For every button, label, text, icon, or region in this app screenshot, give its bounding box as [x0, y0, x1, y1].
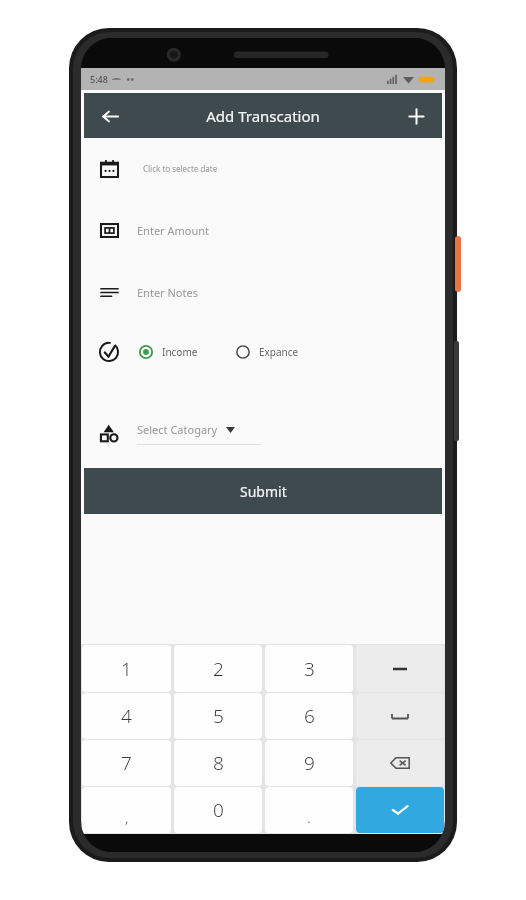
- button[interactable]: Expance: [236, 345, 299, 359]
- button[interactable]: 7: [82, 740, 171, 786]
- button[interactable]: 0: [174, 787, 262, 833]
- staticText: 2: [213, 656, 224, 682]
- button[interactable]: Back: [93, 99, 127, 133]
- button[interactable]: 1: [82, 645, 171, 692]
- staticText: 5: [213, 703, 224, 729]
- button[interactable]: Income: [139, 345, 198, 359]
- button[interactable]: 2: [174, 645, 262, 692]
- staticText: Add Transcation: [206, 106, 320, 126]
- staticText: Income: [162, 345, 198, 359]
- button[interactable]: 6: [265, 693, 353, 739]
- button[interactable]: Click to selecte date: [81, 154, 445, 182]
- staticText: 8: [213, 750, 224, 776]
- staticText: 0: [213, 797, 224, 823]
- button[interactable]: 8: [174, 740, 262, 786]
- staticText: ,: [125, 807, 129, 827]
- staticText: Click to selecte date: [143, 163, 218, 174]
- staticText: 3: [304, 656, 315, 682]
- staticText: Select Catogary: [137, 422, 218, 437]
- button[interactable]: Done: [356, 787, 444, 833]
- staticText: Expance: [259, 345, 299, 359]
- button[interactable]: Select Catogary: [137, 422, 261, 445]
- button[interactable]: Minus: [356, 645, 444, 692]
- button[interactable]: 9: [265, 740, 353, 786]
- staticText: 6: [304, 703, 315, 729]
- staticText: 9: [304, 750, 315, 776]
- button[interactable]: Enter Notes: [81, 278, 445, 306]
- button[interactable]: 3: [265, 645, 353, 692]
- staticText: .: [307, 807, 311, 827]
- button[interactable]: ,: [82, 787, 171, 833]
- button[interactable]: 5: [174, 693, 262, 739]
- staticText: 7: [121, 750, 132, 776]
- button[interactable]: Delete: [356, 740, 444, 786]
- button[interactable]: 4: [82, 693, 171, 739]
- button[interactable]: Space: [356, 693, 444, 739]
- staticText: Enter Notes: [137, 285, 198, 300]
- staticText: 5:48: [90, 73, 108, 85]
- button[interactable]: Enter Amount: [81, 216, 445, 244]
- button[interactable]: Add: [399, 99, 433, 133]
- staticText: 4: [121, 703, 132, 729]
- staticText: Enter Amount: [137, 223, 210, 238]
- staticText: 1: [121, 656, 132, 682]
- staticText: Submit: [240, 482, 287, 501]
- button[interactable]: Submit: [84, 468, 442, 514]
